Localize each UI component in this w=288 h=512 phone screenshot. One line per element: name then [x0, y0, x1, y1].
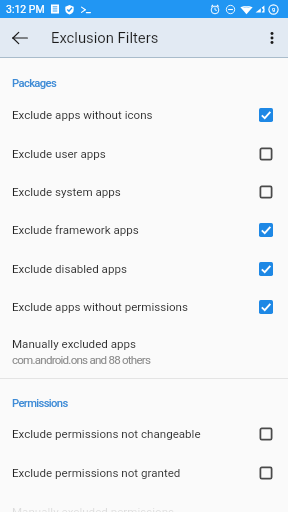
button[interactable]: Exclude framework apps: [0, 211, 288, 249]
staticText: Packages: [12, 77, 57, 90]
staticText: Manually excluded permissions: [12, 505, 175, 512]
staticText: Exclude permissions not granted: [12, 466, 181, 480]
staticText: Exclude user apps: [12, 147, 106, 161]
staticText: Exclude apps without permissions: [12, 300, 188, 314]
button[interactable]: Manually excluded apps: [0, 324, 288, 374]
staticText: Exclude disabled apps: [12, 262, 127, 276]
staticText: 9: [272, 6, 276, 13]
button[interactable]: Exclude permissions not granted: [0, 454, 288, 492]
staticText: Manually excluded apps: [12, 337, 137, 351]
staticText: Exclude system apps: [12, 185, 121, 199]
staticText: Permissions: [12, 397, 68, 410]
staticText: Exclude permissions not changeable: [12, 427, 201, 441]
button[interactable]: Exclude apps without icons: [0, 96, 288, 134]
staticText: com.android.ons and 88 others: [12, 353, 151, 367]
button[interactable]: Manually excluded permissions: [0, 492, 288, 512]
button[interactable]: More options: [256, 22, 288, 54]
button[interactable]: Exclude apps without permissions: [0, 288, 288, 326]
staticText: 3:12 PM: [6, 3, 45, 15]
button[interactable]: Exclude user apps: [0, 135, 288, 173]
staticText: Exclude apps without icons: [12, 108, 153, 122]
button[interactable]: Exclude system apps: [0, 173, 288, 211]
button[interactable]: Exclude disabled apps: [0, 250, 288, 288]
button[interactable]: Exclude permissions not changeable: [0, 415, 288, 453]
staticText: Exclude framework apps: [12, 223, 139, 237]
staticText: Exclusion Filters: [51, 29, 159, 46]
button[interactable]: Navigate up: [0, 18, 39, 57]
